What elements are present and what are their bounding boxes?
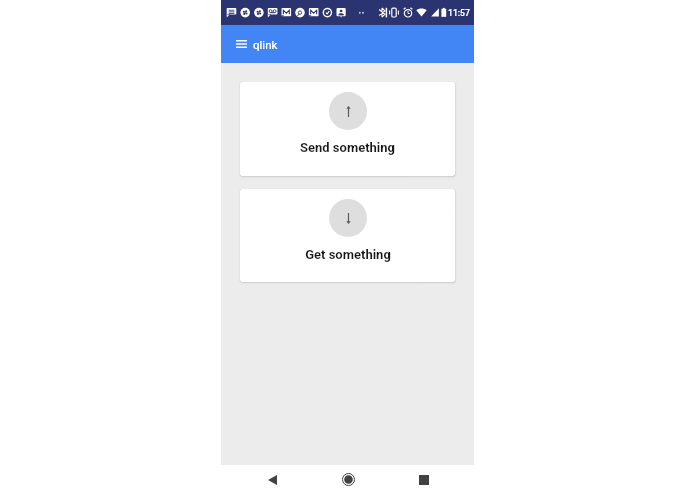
button[interactable]: Get something	[240, 189, 455, 282]
button[interactable]: Home	[327, 465, 369, 494]
staticText: Get something	[305, 247, 391, 262]
button[interactable]: Send something	[240, 82, 455, 176]
staticText: qlink	[253, 38, 278, 51]
staticText: 11:57	[448, 8, 470, 18]
staticText: Send something	[300, 140, 395, 155]
button[interactable]: Open navigation drawer	[230, 33, 252, 55]
button[interactable]: Back	[251, 465, 293, 494]
button[interactable]: Recent apps	[403, 465, 445, 494]
